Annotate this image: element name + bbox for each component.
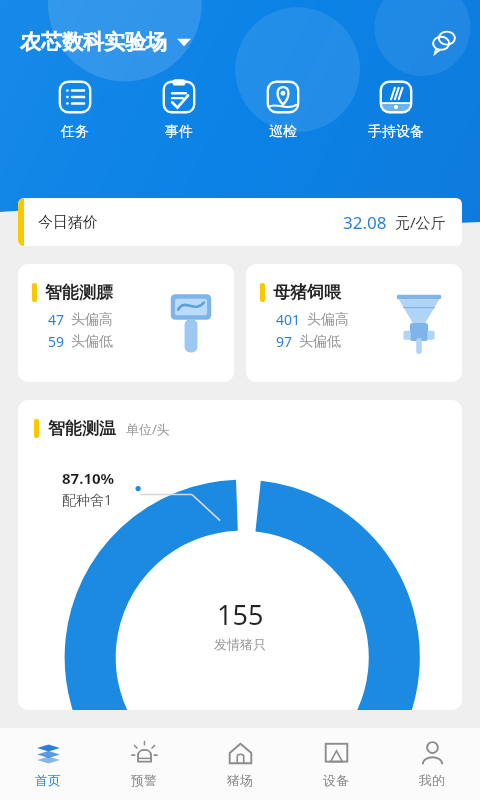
- staticText: 我的: [419, 772, 445, 788]
- button[interactable]: 今日猪价: [18, 198, 462, 246]
- button[interactable]: 农芯数科实验场: [20, 25, 191, 59]
- button[interactable]: 我的: [384, 728, 480, 800]
- staticText: 设备: [323, 772, 349, 788]
- button[interactable]: 任务: [46, 76, 104, 143]
- staticText: 401: [276, 310, 301, 329]
- staticText: 巡检: [269, 123, 297, 141]
- staticText: 32.08: [343, 211, 387, 234]
- staticText: 单位/头: [126, 420, 170, 438]
- staticText: 任务: [61, 123, 89, 141]
- staticText: 元/公斤: [395, 212, 446, 232]
- staticText: 配种舍1: [62, 490, 113, 509]
- staticText: 47: [48, 310, 65, 329]
- button[interactable]: 设备: [288, 728, 384, 800]
- button[interactable]: 猪场: [192, 728, 288, 800]
- button[interactable]: 智能测温: [18, 400, 462, 710]
- button[interactable]: 预警: [96, 728, 192, 800]
- staticText: 今日猪价: [38, 213, 98, 232]
- staticText: 87.10%: [62, 468, 115, 488]
- staticText: 首页: [35, 772, 61, 788]
- staticText: 头偏高: [71, 311, 113, 329]
- staticText: 头偏高: [307, 311, 349, 329]
- staticText: 农芯数科实验场: [20, 29, 167, 55]
- staticText: 手持设备: [368, 123, 424, 141]
- button[interactable]: 事件: [150, 76, 208, 143]
- button[interactable]: 首页: [0, 728, 96, 800]
- button[interactable]: 母猪饲喂: [246, 264, 462, 382]
- staticText: 发情猪只: [214, 636, 266, 652]
- staticText: 猪场: [227, 772, 253, 788]
- staticText: 头偏低: [299, 333, 341, 351]
- button[interactable]: 手持设备: [358, 76, 434, 143]
- staticText: 155: [217, 596, 264, 633]
- staticText: 预警: [131, 772, 157, 788]
- staticText: 事件: [165, 123, 193, 141]
- button[interactable]: Messages: [424, 22, 464, 62]
- staticText: 97: [276, 332, 293, 351]
- button[interactable]: 巡检: [254, 76, 312, 143]
- staticText: 头偏低: [71, 333, 113, 351]
- staticText: 智能测温: [48, 418, 116, 439]
- button[interactable]: 智能测膘: [18, 264, 234, 382]
- staticText: 母猪饲喂: [273, 282, 341, 303]
- staticText: 智能测膘: [45, 282, 113, 303]
- staticText: 59: [48, 332, 65, 351]
